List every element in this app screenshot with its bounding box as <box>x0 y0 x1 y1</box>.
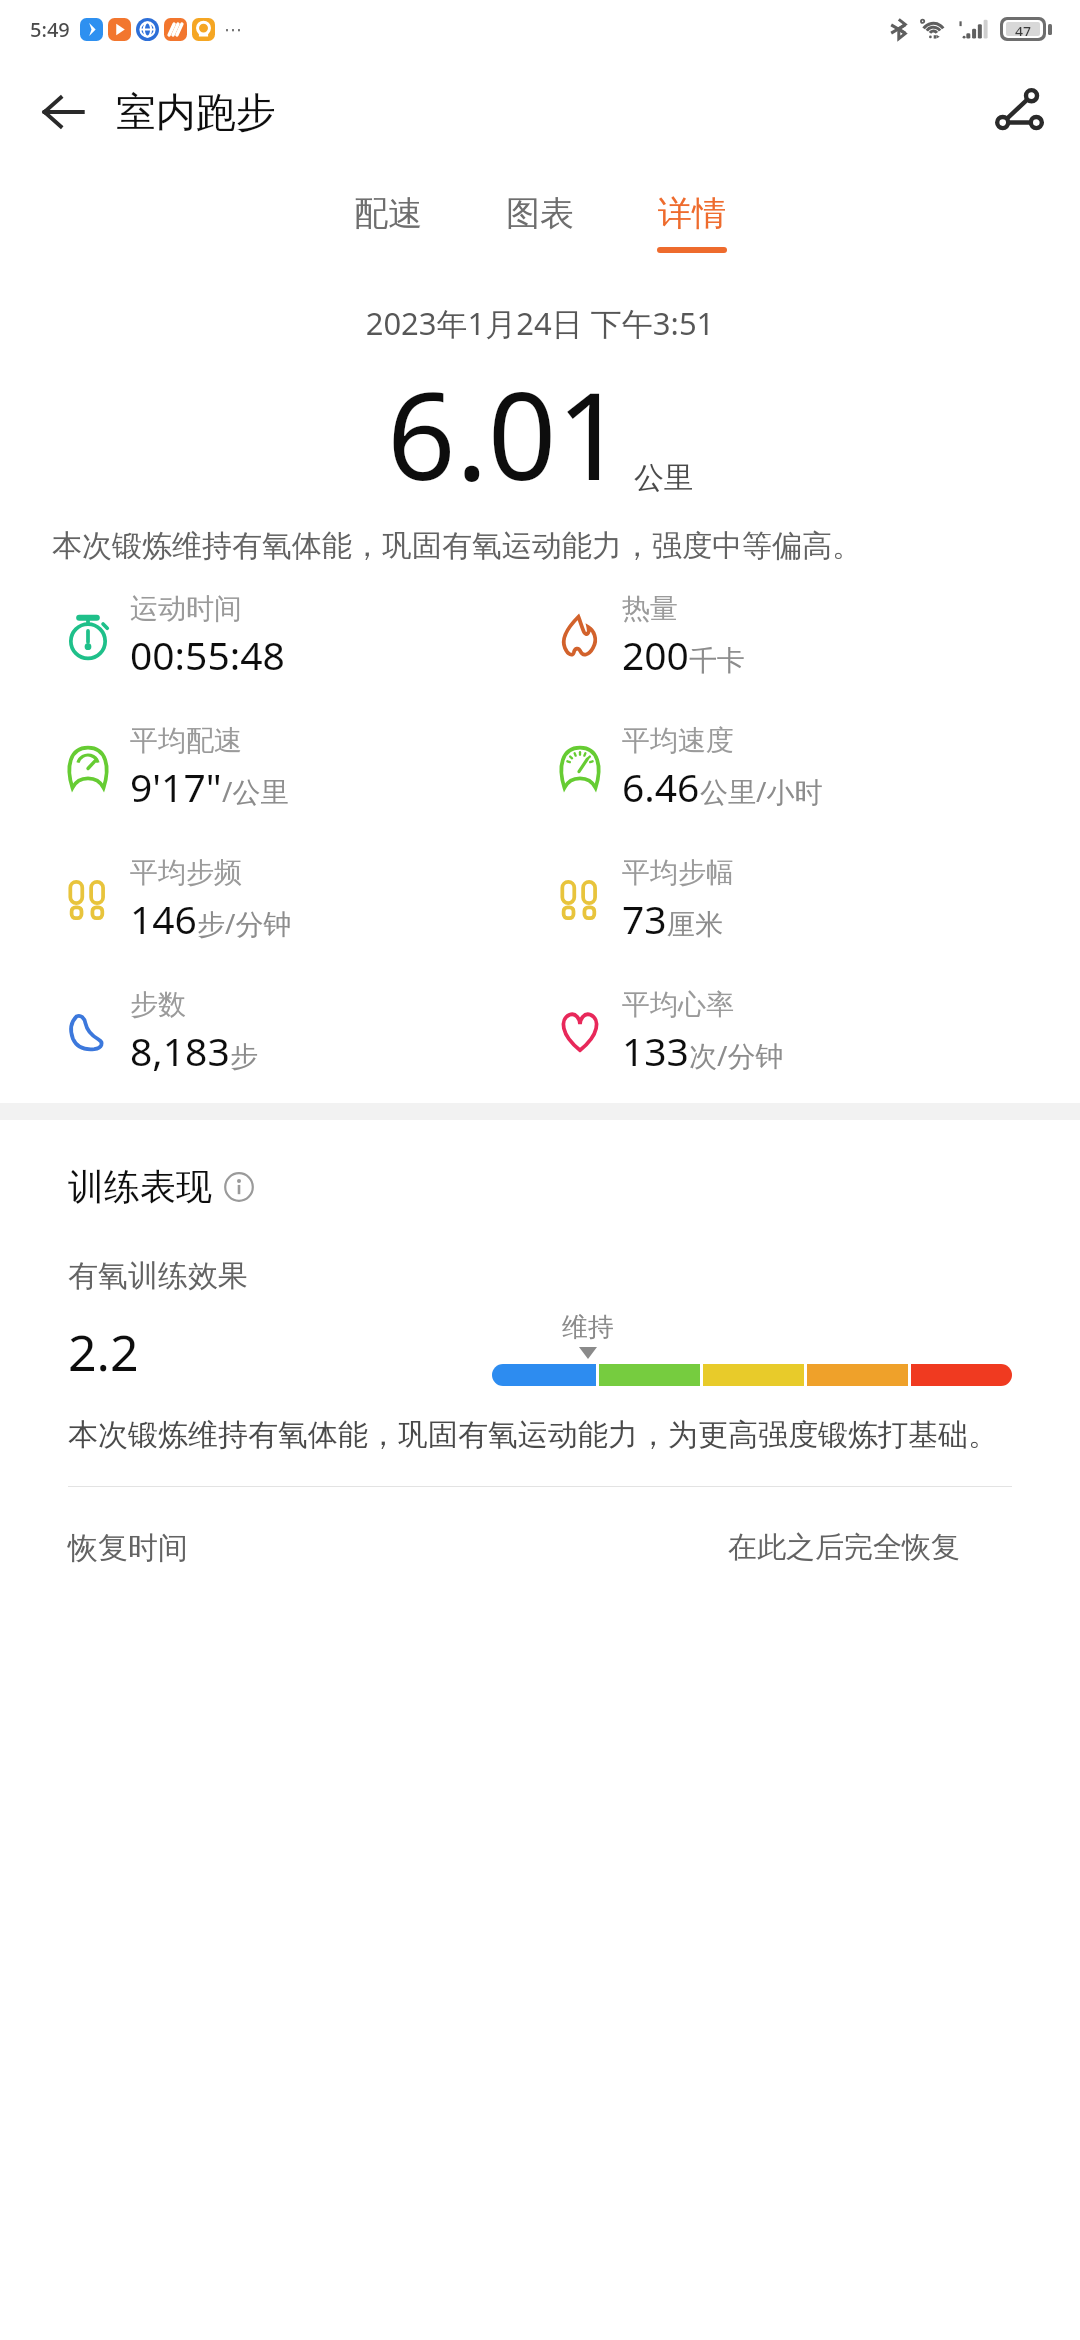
staticText: 2.2 <box>68 1318 139 1386</box>
staticText: /公里 <box>222 772 289 810</box>
staticText: 133 <box>622 1024 689 1077</box>
staticText: 本次锻炼维持有氧体能，巩固有氧运动能力，为更高强度锻炼打基础。 <box>68 1416 998 1454</box>
staticText: 步/分钟 <box>197 904 292 942</box>
button[interactable]: 运动时间 <box>62 591 540 681</box>
button[interactable]: 步数 <box>62 987 540 1077</box>
button[interactable]: 平均步幅 <box>554 855 1080 945</box>
button[interactable]: 平均心率 <box>554 987 1080 1077</box>
button[interactable]: Back <box>32 81 94 143</box>
staticText: 平均步频 <box>130 855 242 890</box>
staticText: 次/分钟 <box>689 1036 784 1074</box>
button[interactable]: Share <box>988 80 1052 144</box>
staticText: 运动时间 <box>130 591 242 626</box>
staticText: 室内跑步 <box>116 87 276 137</box>
button[interactable]: 训练表现 <box>68 1164 254 1209</box>
staticText: 00:55:48 <box>130 628 285 681</box>
staticText: 公里/小时 <box>700 772 823 810</box>
staticText: 详情 <box>658 192 726 235</box>
staticText: 平均心率 <box>622 987 734 1022</box>
staticText: 维持 <box>562 1311 614 1344</box>
staticText: 6.01 <box>387 352 626 515</box>
staticText: 47 <box>1015 22 1032 36</box>
staticText: 步数 <box>130 987 186 1022</box>
staticText: 训练表现 <box>68 1164 212 1209</box>
staticText: 厘米 <box>667 907 723 942</box>
staticText: 千卡 <box>689 643 745 678</box>
staticText: 恢复时间 <box>68 1529 188 1567</box>
staticText: 平均配速 <box>130 723 242 758</box>
staticText: 热量 <box>622 591 678 626</box>
staticText: 8,183 <box>130 1024 230 1077</box>
staticText: 在此之后完全恢复 <box>728 1529 960 1566</box>
button[interactable]: 平均配速 <box>62 723 540 813</box>
staticText: 2023年1月24日 下午3:51 <box>0 302 1080 344</box>
button[interactable]: 热量 <box>554 591 1080 681</box>
button[interactable]: 平均速度 <box>554 723 1080 813</box>
staticText: 平均步幅 <box>622 855 734 890</box>
staticText: 73 <box>622 892 667 945</box>
staticText: 有氧训练效果 <box>68 1257 248 1295</box>
staticText: 步 <box>230 1039 258 1074</box>
button[interactable]: 平均步频 <box>62 855 540 945</box>
staticText: 5:49 <box>30 16 70 43</box>
staticText: 9'17" <box>130 760 222 813</box>
staticText: 200 <box>622 628 689 681</box>
button[interactable]: 配速 <box>339 188 437 257</box>
button[interactable]: 图表 <box>491 188 589 257</box>
staticText: ⋯ <box>224 19 242 40</box>
other: Info <box>224 1172 254 1202</box>
staticText: 本次锻炼维持有氧体能，巩固有氧运动能力，强度中等偏高。 <box>52 527 1028 565</box>
staticText: 146 <box>130 892 197 945</box>
staticText: 6.46 <box>622 760 700 813</box>
staticText: 平均速度 <box>622 723 734 758</box>
button[interactable]: 详情 <box>643 188 741 257</box>
staticText: 公里 <box>634 459 694 497</box>
staticText: 配速 <box>354 192 422 235</box>
staticText: 图表 <box>506 192 574 235</box>
